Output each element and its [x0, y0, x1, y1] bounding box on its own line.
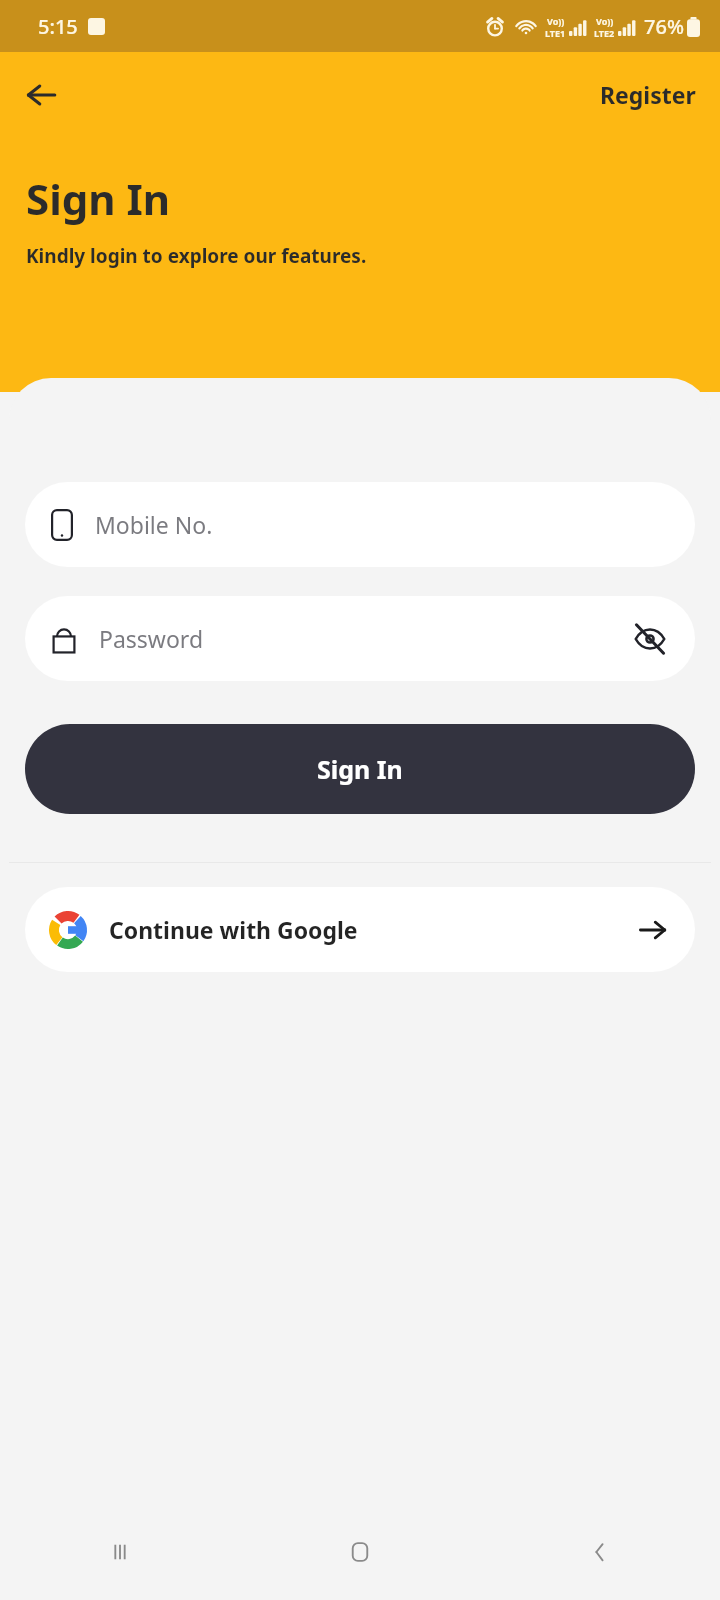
staticText: Mobile No. — [95, 509, 213, 540]
staticText: Continue with Google — [109, 914, 358, 945]
button[interactable]: Back — [12, 66, 70, 124]
button[interactable]: Continue with Google — [25, 887, 695, 972]
staticText: Sign In — [317, 752, 403, 786]
staticText: Kindly login to explore our features. — [26, 243, 367, 269]
staticText: Vo)) — [596, 15, 614, 27]
button[interactable]: Password — [25, 596, 695, 681]
staticText: 5:15 — [38, 13, 78, 40]
staticText: 76% — [644, 13, 684, 40]
staticText: LTE1 — [545, 27, 566, 39]
button[interactable]: Home — [240, 1504, 480, 1600]
staticText: Vo)) — [547, 15, 565, 27]
button[interactable]: Show password — [627, 616, 673, 662]
button[interactable]: Mobile No. — [25, 482, 695, 567]
staticText: Sign In — [26, 170, 171, 227]
button[interactable]: Back — [480, 1504, 720, 1600]
staticText: Password — [99, 623, 204, 654]
staticText: Register — [600, 79, 696, 110]
button[interactable]: Register — [592, 69, 704, 120]
button[interactable]: Sign In — [25, 724, 695, 814]
button[interactable]: Recents — [0, 1504, 240, 1600]
staticText: LTE2 — [594, 27, 615, 39]
